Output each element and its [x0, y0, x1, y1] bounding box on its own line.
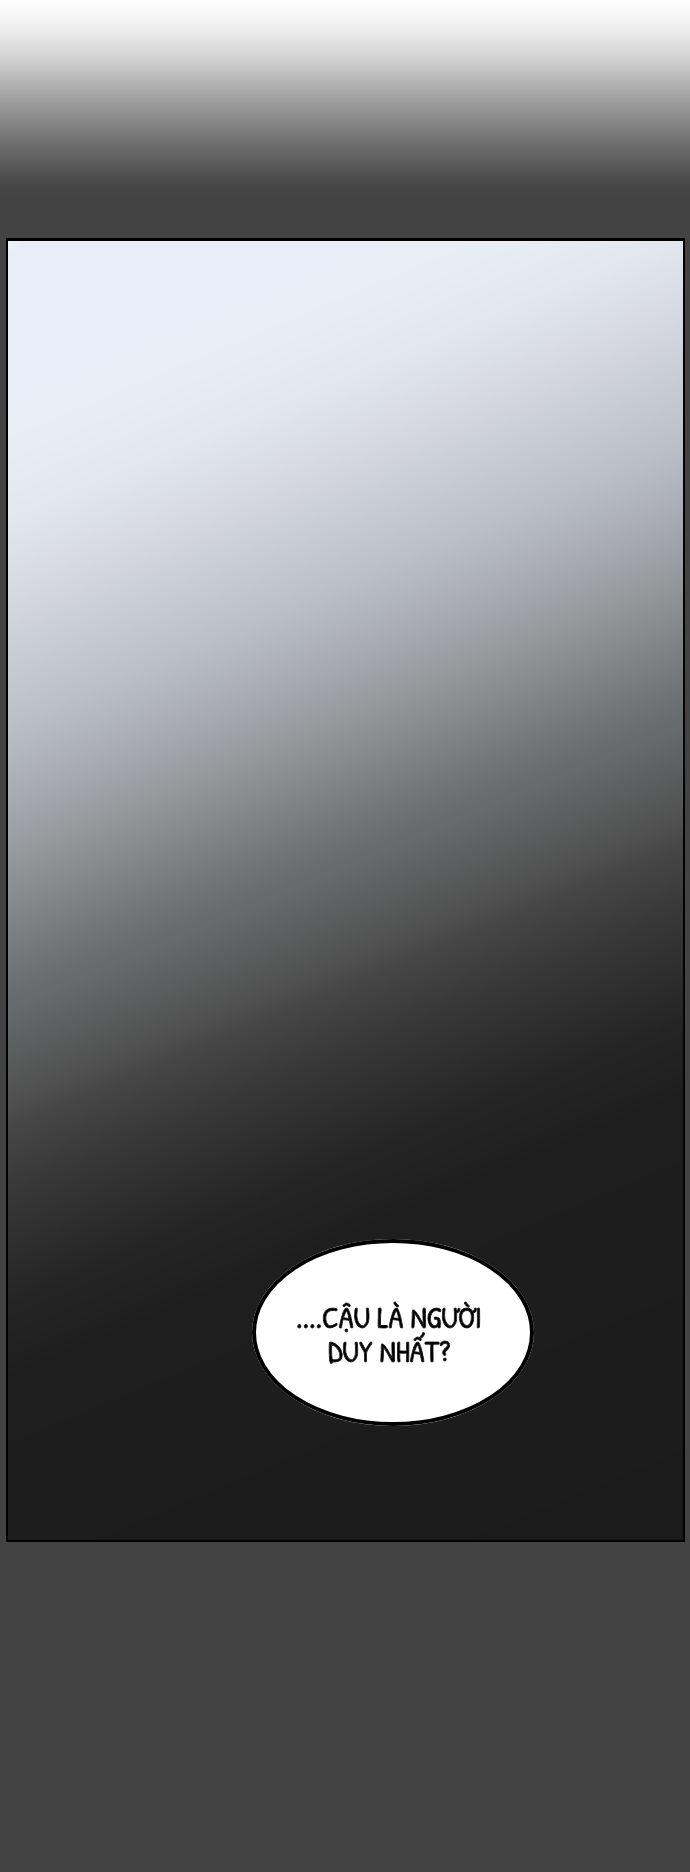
staticText: ....CẬU LÀ NGƯỜI DUY NHẤT?: [296, 1296, 482, 1372]
button[interactable]: Speech balloon: [252, 1239, 534, 1426]
button[interactable]: Comic page, tap to toggle reader control…: [0, 0, 690, 1872]
staticText: ....CẬU LÀ NGƯỜI DUY NHẤT?: [296, 1296, 482, 1372]
